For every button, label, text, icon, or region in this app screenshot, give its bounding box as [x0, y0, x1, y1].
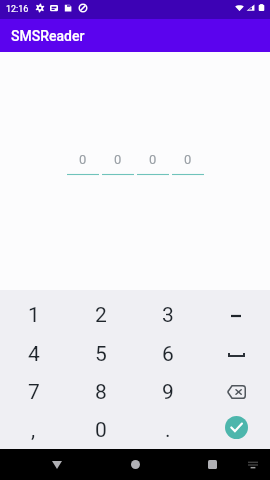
button[interactable]: 9 — [134, 373, 202, 411]
staticText: SMSReader — [11, 28, 85, 44]
button[interactable]: 6 — [134, 335, 202, 373]
staticText: . — [165, 418, 171, 443]
button[interactable]: Home — [114, 449, 156, 480]
staticText: , — [31, 418, 36, 443]
staticText: 0 — [149, 152, 157, 167]
button[interactable]: , — [0, 411, 67, 449]
button[interactable]: dash — [202, 296, 270, 335]
staticText: 8 — [95, 380, 107, 405]
staticText: 12:16 — [6, 4, 29, 15]
staticText: 6 — [162, 342, 174, 367]
staticText: 5 — [95, 342, 107, 367]
button[interactable]: ok — [202, 411, 270, 449]
staticText: 0 — [184, 152, 192, 167]
button[interactable]: 1 — [0, 296, 67, 335]
button[interactable]: back — [202, 373, 270, 411]
button[interactable]: . — [134, 411, 202, 449]
button[interactable]: 7 — [0, 373, 67, 411]
staticText: 0 — [114, 152, 122, 167]
staticText: 1 — [28, 303, 40, 328]
staticText: 0 — [95, 418, 107, 443]
button[interactable]: 4 — [0, 335, 67, 373]
button[interactable]: 8 — [67, 373, 134, 411]
staticText: 4 — [28, 342, 40, 367]
button[interactable]: Switch keyboard — [240, 452, 266, 478]
button[interactable]: 5 — [67, 335, 134, 373]
staticText: 9 — [162, 380, 174, 405]
staticText: 0 — [79, 152, 87, 167]
button[interactable]: 3 — [134, 296, 202, 335]
button[interactable]: 0 — [67, 411, 134, 449]
button[interactable]: Back — [36, 449, 78, 480]
staticText: 3 — [162, 303, 174, 328]
button[interactable]: space — [202, 335, 270, 373]
staticText: 7 — [28, 380, 40, 405]
staticText: 2 — [95, 303, 107, 328]
button[interactable]: 2 — [67, 296, 134, 335]
button[interactable]: Recent apps — [191, 449, 233, 480]
